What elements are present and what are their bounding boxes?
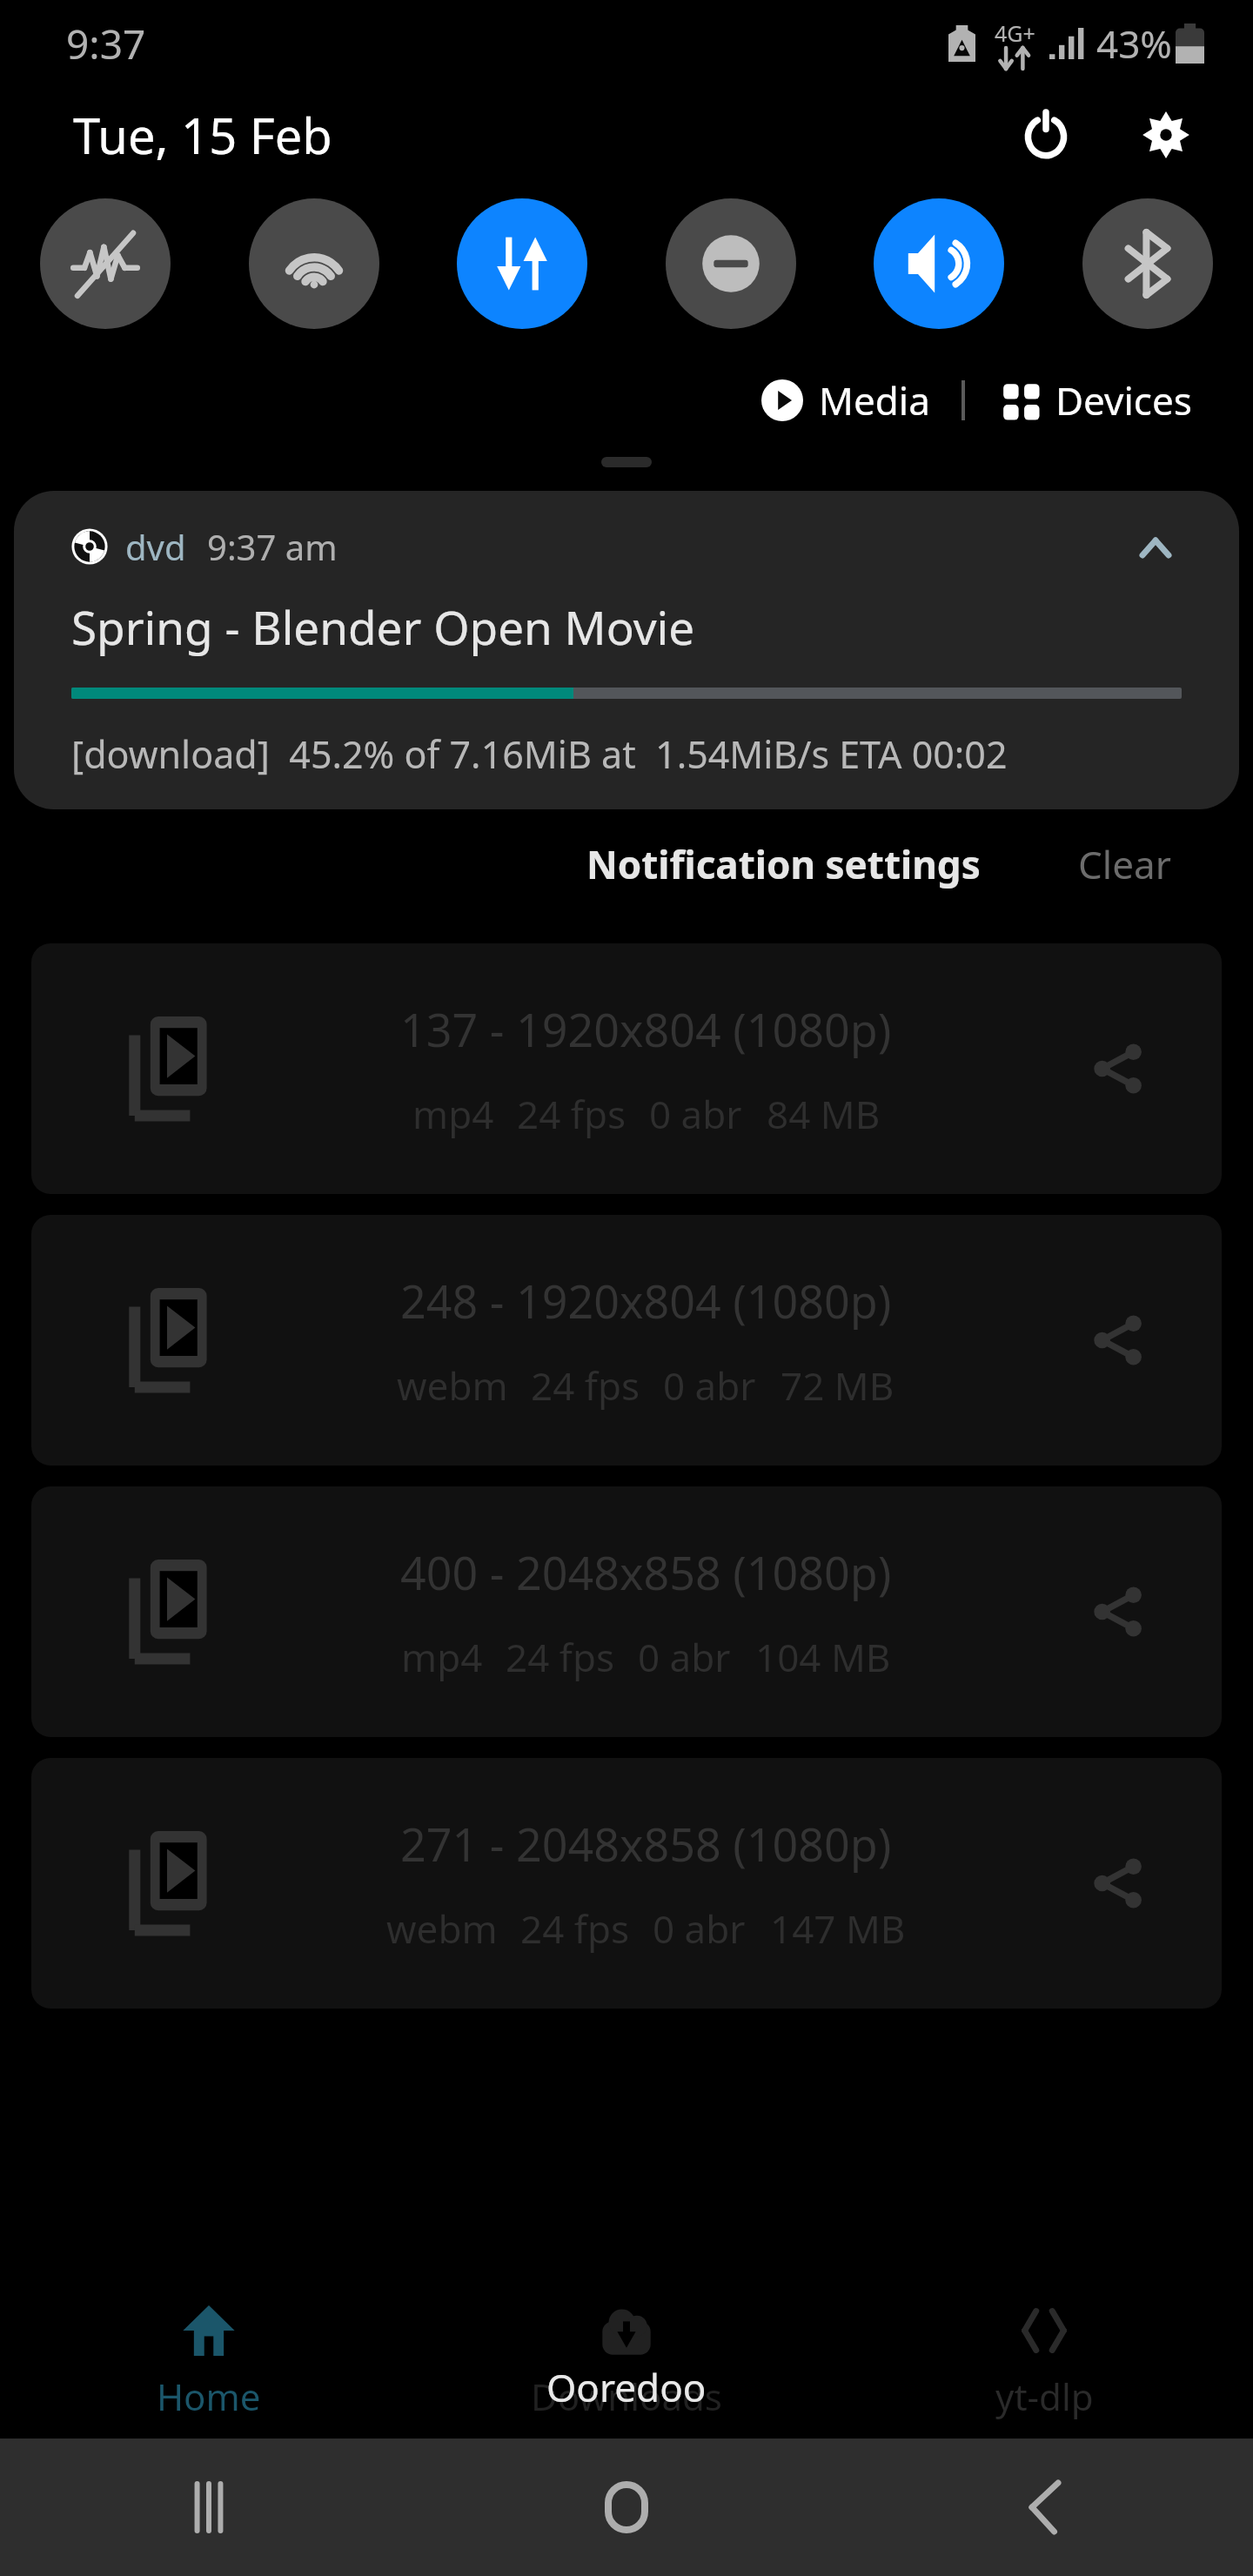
staticText: Tue, 15 Feb xyxy=(73,102,332,168)
staticText: Notification settings xyxy=(586,838,981,890)
staticText: 104 MB xyxy=(755,1631,891,1683)
button[interactable]: Share xyxy=(1075,1841,1159,1925)
staticText: dvd xyxy=(125,523,186,570)
staticText: mp4 xyxy=(401,1631,483,1683)
staticText: 0 abr xyxy=(653,1902,746,1955)
staticText: Ooredoo xyxy=(546,2361,707,2413)
button[interactable]: dvd xyxy=(14,491,1239,809)
staticText: Spring - Blender Open Movie xyxy=(71,595,695,658)
staticText: 0 abr xyxy=(663,1359,756,1412)
staticText: 24 fps xyxy=(520,1902,630,1955)
button[interactable]: Devices xyxy=(991,367,1201,433)
button[interactable]: Share xyxy=(1075,1570,1159,1654)
staticText: 137 - 1920x804 (1080p) xyxy=(400,998,892,1060)
button[interactable]: Power xyxy=(1008,97,1084,173)
button[interactable]: Clear xyxy=(1064,829,1185,899)
button[interactable]: 137 - 1920x804 (1080p) xyxy=(31,943,1222,1194)
staticText: 24 fps xyxy=(506,1631,615,1683)
staticText: 84 MB xyxy=(767,1088,881,1140)
staticText: Devices xyxy=(1055,374,1192,426)
button[interactable]: Collapse notification xyxy=(1129,520,1182,573)
staticText: 4G+ xyxy=(995,18,1035,48)
staticText: 24 fps xyxy=(517,1088,626,1140)
staticText: yt-dlp xyxy=(995,2371,1094,2421)
staticText: webm xyxy=(386,1902,498,1955)
button[interactable]: Wi-Fi xyxy=(249,198,379,329)
staticText: 9:37 am xyxy=(207,523,338,570)
staticText: 147 MB xyxy=(770,1902,906,1955)
button[interactable]: Share xyxy=(1075,1027,1159,1110)
button[interactable]: Bluetooth xyxy=(1082,198,1213,329)
staticText: 0 abr xyxy=(649,1088,742,1140)
staticText: 248 - 1920x804 (1080p) xyxy=(400,1270,892,1332)
button[interactable]: Downloads xyxy=(418,2284,835,2438)
staticText: Media xyxy=(819,374,930,426)
staticText: 24 fps xyxy=(531,1359,640,1412)
staticText: Clear xyxy=(1078,838,1171,890)
button[interactable]: 400 - 2048x858 (1080p) xyxy=(31,1486,1222,1737)
button[interactable]: Home xyxy=(418,2438,835,2576)
staticText: webm xyxy=(397,1359,508,1412)
button[interactable]: Data saver xyxy=(40,198,171,329)
staticText: [download] 45.2% of 7.16MiB at 1.54MiB/s… xyxy=(71,728,1008,780)
staticText: mp4 xyxy=(412,1088,494,1140)
staticText: 0 abr xyxy=(638,1631,731,1683)
button[interactable]: 271 - 2048x858 (1080p) xyxy=(31,1758,1222,2009)
button[interactable]: Media xyxy=(753,367,939,433)
button[interactable]: Do not disturb xyxy=(666,198,796,329)
staticText: 400 - 2048x858 (1080p) xyxy=(400,1541,892,1603)
staticText: Home xyxy=(157,2371,261,2421)
staticText: 72 MB xyxy=(781,1359,895,1412)
staticText: 271 - 2048x858 (1080p) xyxy=(400,1813,892,1875)
button[interactable]: yt-dlp xyxy=(835,2284,1253,2438)
button[interactable]: 248 - 1920x804 (1080p) xyxy=(31,1215,1222,1466)
button[interactable]: Back xyxy=(835,2438,1253,2576)
button[interactable]: Home xyxy=(0,2284,418,2438)
staticText: Downloads xyxy=(531,2371,722,2421)
button[interactable]: Sound xyxy=(874,198,1004,329)
button[interactable]: Notification settings xyxy=(573,829,995,899)
button[interactable]: Mobile data xyxy=(457,198,587,329)
button[interactable]: Settings xyxy=(1128,97,1204,173)
button[interactable]: Recents xyxy=(0,2438,418,2576)
staticText: 43% xyxy=(1096,17,1172,70)
button[interactable]: Share xyxy=(1075,1298,1159,1382)
staticText: 9:37 xyxy=(66,17,146,71)
